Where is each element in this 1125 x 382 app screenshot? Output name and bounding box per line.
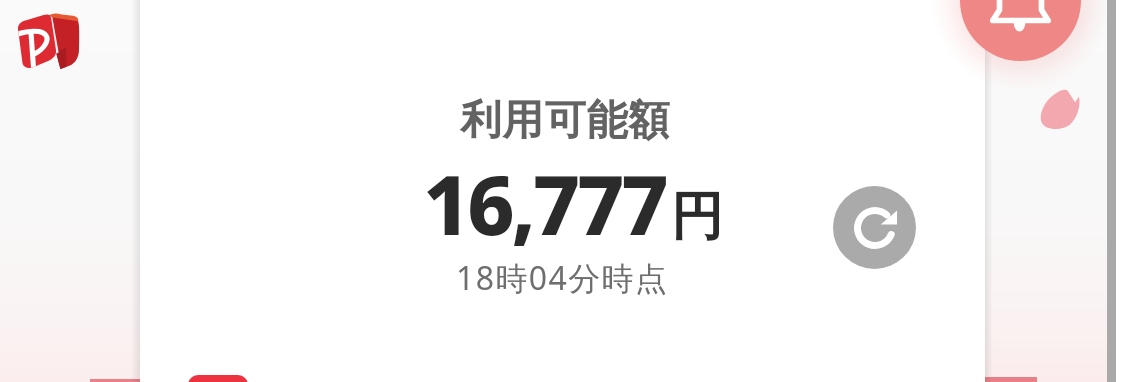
button[interactable]: 通知 <box>960 0 1081 61</box>
staticText: 18時04分時点 <box>456 256 669 300</box>
other: PayPay <box>17 14 79 69</box>
staticText: 円 <box>671 184 723 250</box>
staticText: 16,777 <box>423 147 666 259</box>
staticText: 利用可能額 <box>460 95 670 147</box>
button[interactable]: 更新 <box>833 186 916 269</box>
